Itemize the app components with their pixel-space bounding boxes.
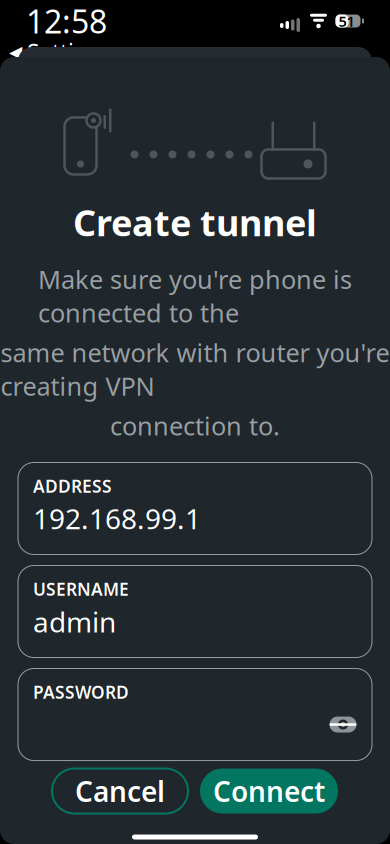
staticText: 192.168.99.1 — [33, 500, 201, 537]
staticText: same network with router you're creating… — [0, 336, 389, 403]
staticText: 51 — [338, 11, 354, 31]
staticText: admin — [33, 603, 116, 640]
button[interactable]: USERNAME — [18, 565, 372, 657]
staticText: USERNAME — [33, 577, 129, 600]
button[interactable]: ◀ — [5, 36, 117, 68]
staticText: 12:58 — [26, 0, 107, 42]
staticText: Settings — [27, 37, 113, 67]
staticText: Cancel — [75, 772, 165, 810]
button[interactable]: Connect — [200, 768, 338, 813]
button[interactable]: PASSWORD — [18, 668, 372, 760]
staticText: ◀ — [9, 42, 22, 62]
staticText: Make sure you're phone is connected to t… — [38, 262, 352, 330]
button[interactable]: ADDRESS — [18, 462, 372, 554]
button[interactable]: Cancel — [52, 768, 188, 813]
staticText: Connect — [213, 772, 325, 810]
staticText: Create tunnel — [73, 198, 317, 246]
staticText: connection to. — [110, 409, 280, 442]
staticText: ADDRESS — [33, 474, 112, 497]
staticText: PASSWORD — [33, 680, 129, 703]
